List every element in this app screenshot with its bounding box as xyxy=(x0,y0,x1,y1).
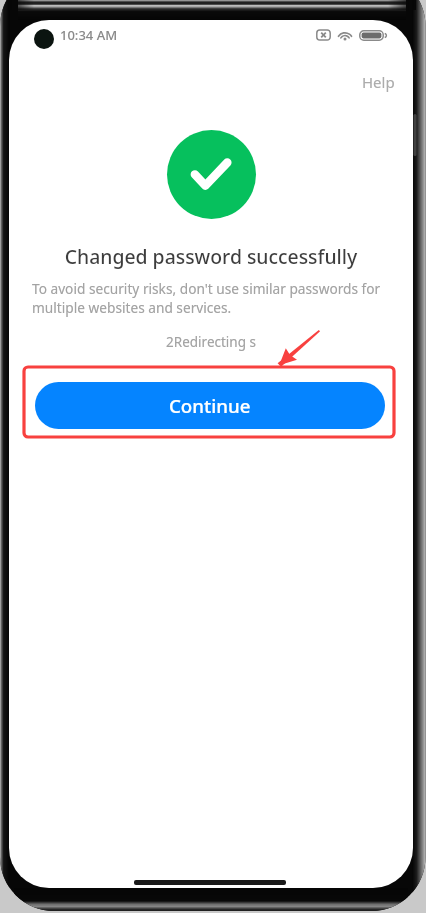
other: Ringer muted xyxy=(316,29,331,41)
staticText: Help xyxy=(362,72,395,92)
button[interactable]: Continue xyxy=(35,382,385,429)
other: Battery full xyxy=(359,30,386,41)
staticText: 2Redirecting s xyxy=(9,333,413,351)
staticText: Continue xyxy=(169,393,251,418)
staticText: 10:34 AM xyxy=(60,26,118,44)
staticText: Changed password successfully xyxy=(9,243,413,269)
staticText: To avoid security risks, don't use simil… xyxy=(32,279,390,317)
button[interactable]: Help xyxy=(357,68,400,96)
other: Wi-Fi connected xyxy=(337,29,353,41)
